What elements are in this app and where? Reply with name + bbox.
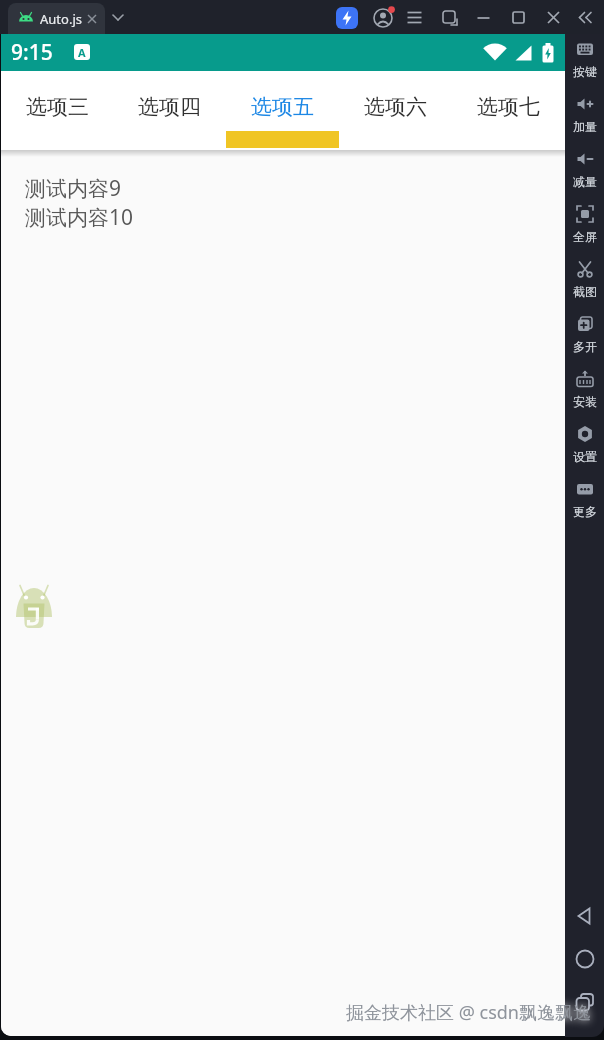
button[interactable]: 选项三 <box>1 71 113 150</box>
button[interactable]: 全屏 <box>565 199 604 254</box>
button[interactable] <box>372 6 396 30</box>
button[interactable]: 选项七 <box>452 71 565 150</box>
button[interactable]: 选项五 <box>226 71 339 150</box>
staticText: 选项六 <box>364 94 427 120</box>
button[interactable]: 选项四 <box>113 71 226 150</box>
button[interactable]: 选项六 <box>339 71 452 150</box>
staticText: 多开 <box>573 339 597 354</box>
button[interactable] <box>577 9 594 26</box>
staticText: 测试内容10 <box>25 203 134 232</box>
button[interactable] <box>406 9 423 26</box>
staticText: 截图 <box>573 284 597 299</box>
button[interactable]: 更多 <box>565 474 604 529</box>
button[interactable] <box>574 991 596 1013</box>
staticText: 安装 <box>573 394 597 409</box>
button[interactable]: 安装 <box>565 364 604 419</box>
button[interactable]: 设置 <box>565 419 604 474</box>
staticText: 按键 <box>573 64 597 79</box>
staticText: 减量 <box>573 174 597 189</box>
staticText: 9:15 <box>11 38 53 67</box>
staticText: A <box>78 45 86 60</box>
button[interactable]: Auto.js <box>8 3 105 34</box>
button[interactable] <box>510 9 527 26</box>
button[interactable] <box>475 9 492 26</box>
button[interactable] <box>15 583 53 631</box>
staticText: 选项四 <box>138 94 201 120</box>
staticText: 掘金技术社区 @ csdn飘逸飘逸 <box>346 1000 591 1025</box>
button[interactable] <box>336 7 358 29</box>
button[interactable]: 多开 <box>565 309 604 364</box>
staticText: 选项三 <box>26 94 89 120</box>
button[interactable] <box>108 8 128 26</box>
button[interactable] <box>574 905 596 927</box>
button[interactable]: 截图 <box>565 254 604 309</box>
button[interactable] <box>545 9 562 26</box>
button[interactable] <box>441 9 459 27</box>
staticText: 设置 <box>573 449 597 464</box>
staticText: 全屏 <box>573 229 597 244</box>
staticText: 加量 <box>573 119 597 134</box>
button[interactable]: 按键 <box>565 34 604 89</box>
staticText: 选项五 <box>251 94 314 120</box>
button[interactable]: 加量 <box>565 89 604 144</box>
button[interactable]: 减量 <box>565 144 604 199</box>
staticText: 测试内容9 <box>25 174 122 203</box>
button[interactable] <box>574 948 596 970</box>
staticText: Auto.js <box>40 10 82 28</box>
staticText: 选项七 <box>477 94 540 120</box>
staticText: 更多 <box>573 504 597 519</box>
